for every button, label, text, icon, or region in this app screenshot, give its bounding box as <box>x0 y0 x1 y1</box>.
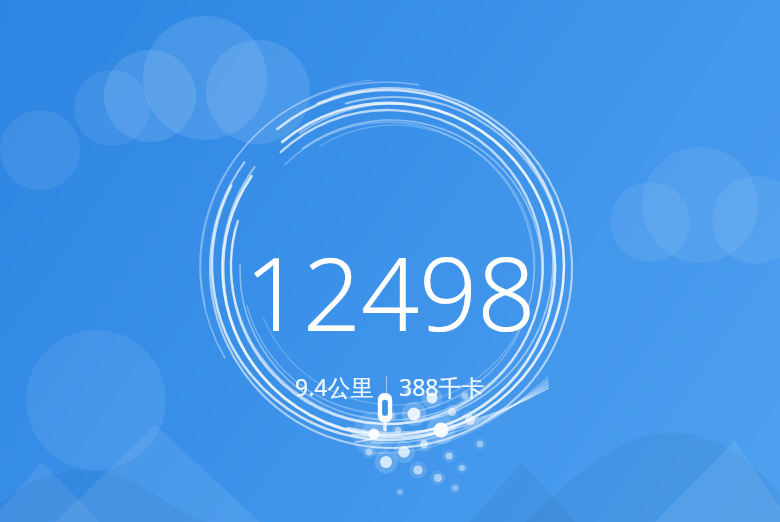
button[interactable]: 12498 <box>0 0 780 522</box>
button[interactable]: 9.4公里 <box>295 371 485 402</box>
staticText: 12498 <box>244 222 536 361</box>
staticText: 9.4公里 <box>295 371 374 402</box>
button[interactable]: Step progress marker <box>376 393 394 433</box>
staticText: 388千卡 <box>399 371 485 402</box>
